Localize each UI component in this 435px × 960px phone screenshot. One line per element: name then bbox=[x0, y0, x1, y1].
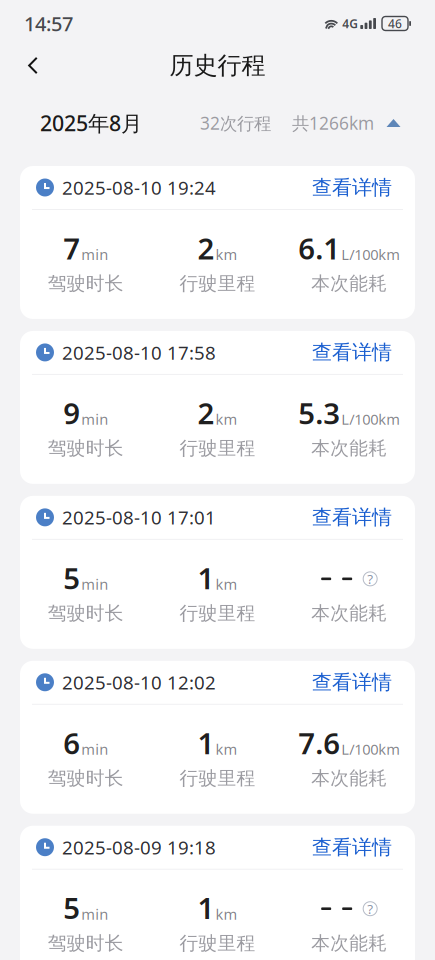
staticText: 共1266km bbox=[292, 111, 374, 134]
staticText: 6 bbox=[63, 723, 80, 762]
staticText: 驾驶时长 bbox=[48, 932, 124, 955]
staticText: 查看详情 bbox=[312, 670, 392, 695]
staticText: 行驶里程 bbox=[179, 767, 255, 790]
staticText: 2025-08-10 17:58 bbox=[62, 340, 216, 365]
staticText: 本次能耗 bbox=[311, 767, 387, 790]
staticText: 本次能耗 bbox=[311, 437, 387, 460]
button[interactable]: 查看详情 bbox=[312, 340, 392, 365]
staticText: 本次能耗 bbox=[311, 932, 387, 955]
button[interactable]: 32次行程 bbox=[200, 111, 401, 134]
staticText: 驾驶时长 bbox=[48, 767, 124, 790]
staticText: 7 bbox=[63, 228, 80, 267]
staticText: 5 bbox=[63, 888, 80, 927]
staticText: km bbox=[215, 409, 237, 429]
staticText: 6.1 bbox=[298, 228, 340, 267]
staticText: 查看详情 bbox=[312, 835, 392, 859]
staticText: 9 bbox=[63, 393, 80, 432]
staticText: 2025-08-09 19:18 bbox=[62, 835, 216, 860]
staticText: km bbox=[215, 904, 237, 924]
staticText: min bbox=[81, 904, 108, 924]
staticText: km bbox=[215, 739, 237, 759]
staticText: 5 bbox=[63, 558, 80, 597]
button[interactable]: 2025-08-10 19:24 bbox=[20, 166, 415, 319]
button[interactable]: 2025-08-09 19:18 bbox=[20, 826, 415, 960]
staticText: 驾驶时长 bbox=[48, 437, 124, 460]
staticText: 46 bbox=[388, 15, 402, 31]
staticText: min bbox=[81, 409, 108, 429]
button[interactable]: 2025-08-10 17:01 bbox=[20, 496, 415, 649]
staticText: 2025-08-10 19:24 bbox=[62, 175, 216, 200]
staticText: 32次行程 bbox=[200, 111, 271, 134]
staticText: 1 bbox=[197, 558, 214, 597]
staticText: km bbox=[215, 244, 237, 264]
staticText: L/100km bbox=[341, 244, 400, 264]
staticText: 驾驶时长 bbox=[48, 272, 124, 295]
staticText: 2 bbox=[197, 393, 214, 432]
button[interactable]: 查看详情 bbox=[312, 505, 392, 530]
staticText: 历史行程 bbox=[169, 51, 265, 80]
staticText: 行驶里程 bbox=[179, 272, 255, 295]
staticText: 2 bbox=[197, 228, 214, 267]
staticText: min bbox=[81, 574, 108, 594]
staticText: ? bbox=[367, 570, 373, 588]
staticText: 2025年8月 bbox=[40, 109, 142, 137]
staticText: 本次能耗 bbox=[311, 272, 387, 295]
button[interactable]: 查看详情 bbox=[312, 835, 392, 859]
button[interactable]: 返回 bbox=[11, 43, 55, 87]
staticText: 1 bbox=[197, 723, 214, 762]
staticText: 1 bbox=[197, 888, 214, 927]
staticText: 7.6 bbox=[298, 723, 340, 762]
staticText: 5.3 bbox=[298, 393, 340, 432]
staticText: 查看详情 bbox=[312, 340, 392, 365]
staticText: min bbox=[81, 244, 108, 264]
staticText: 14:57 bbox=[24, 10, 73, 37]
staticText: 本次能耗 bbox=[311, 602, 387, 625]
staticText: 2025-08-10 12:02 bbox=[62, 670, 216, 695]
button[interactable]: 2025-08-10 12:02 bbox=[20, 661, 415, 814]
staticText: L/100km bbox=[341, 739, 400, 759]
staticText: 查看详情 bbox=[312, 505, 392, 530]
staticText: km bbox=[215, 574, 237, 594]
staticText: L/100km bbox=[341, 409, 400, 429]
button[interactable]: 查看详情 bbox=[312, 175, 392, 200]
staticText: 行驶里程 bbox=[179, 602, 255, 625]
staticText: 行驶里程 bbox=[179, 932, 255, 955]
button[interactable]: 查看详情 bbox=[312, 670, 392, 695]
staticText: 行驶里程 bbox=[179, 437, 255, 460]
button[interactable]: 2025-08-10 17:58 bbox=[20, 331, 415, 484]
staticText: 驾驶时长 bbox=[48, 602, 124, 625]
staticText: 2025-08-10 17:01 bbox=[62, 505, 216, 530]
staticText: 4G bbox=[342, 15, 358, 31]
staticText: min bbox=[81, 739, 108, 759]
staticText: 查看详情 bbox=[312, 175, 392, 200]
staticText: ? bbox=[367, 900, 373, 918]
